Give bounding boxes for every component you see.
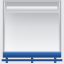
button[interactable]: Stainless steel appliance <box>0 0 64 64</box>
